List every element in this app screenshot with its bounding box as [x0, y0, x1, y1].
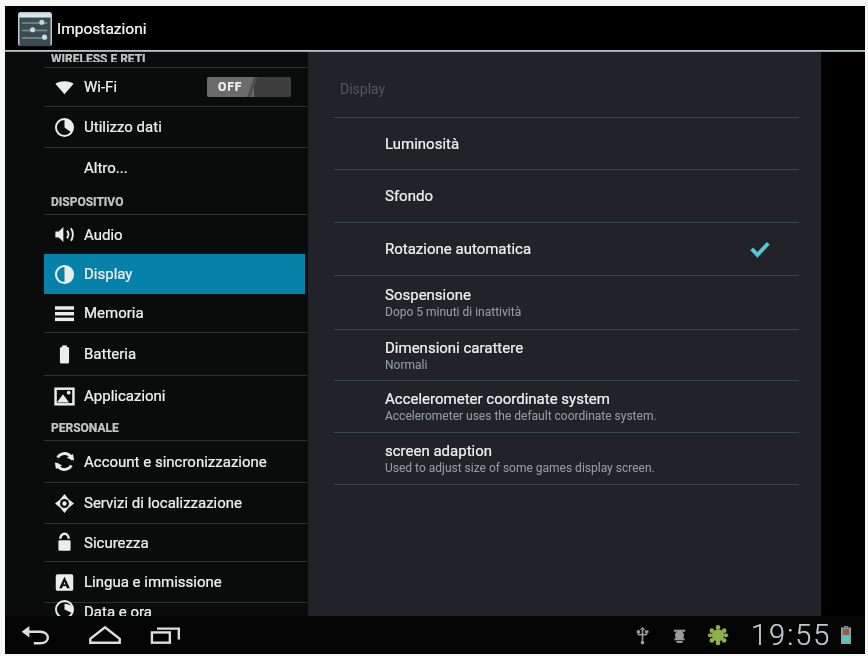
staticText: Sfondo [385, 187, 433, 205]
staticText: Dimensioni carattere [385, 339, 524, 357]
staticText: Rotazione automatica [385, 240, 532, 258]
button[interactable]: Rotazione automatica [385, 223, 799, 275]
staticText: Lingua e immissione [84, 573, 222, 591]
staticText: Memoria [84, 304, 144, 322]
staticText: WIRELESS E RETI [51, 52, 146, 62]
staticText: Accelerometer uses the default coordinat… [385, 409, 657, 423]
staticText: Account e sincronizzazione [84, 453, 267, 471]
staticText: Sospensione [385, 286, 472, 304]
staticText: Impostazioni [57, 20, 147, 38]
button[interactable]: Data e ora [44, 603, 305, 616]
button[interactable]: screen adaption [385, 433, 799, 484]
button[interactable]: Lingua e immissione [44, 562, 305, 602]
button[interactable]: Audio [44, 215, 305, 254]
staticText: Data e ora [84, 603, 152, 616]
button[interactable]: Recent apps [148, 617, 184, 653]
staticText: Applicazioni [84, 387, 166, 405]
button[interactable]: Utilizzo dati [44, 107, 305, 147]
staticText: screen adaption [385, 442, 493, 460]
button[interactable]: Sfondo [385, 170, 799, 222]
button[interactable]: OFF [207, 77, 291, 97]
button[interactable]: Account e sincronizzazione [44, 441, 305, 482]
staticText: Sicurezza [84, 534, 149, 552]
staticText: DISPOSITIVO [51, 195, 124, 209]
staticText: OFF [218, 80, 243, 94]
button[interactable]: Batteria [44, 333, 305, 375]
staticText: 19:55 [751, 618, 832, 652]
button[interactable]: Sospensione [385, 276, 799, 329]
button[interactable]: Sicurezza [44, 524, 305, 561]
button[interactable]: Display [44, 254, 305, 294]
button[interactable]: Rotazione automatica [748, 237, 772, 261]
button[interactable]: Luminosità [385, 118, 799, 169]
button[interactable]: Accelerometer coordinate system [385, 381, 799, 432]
staticText: Utilizzo dati [84, 118, 162, 136]
button[interactable]: Wi-Fi [44, 68, 305, 106]
staticText: Batteria [84, 345, 137, 363]
button[interactable]: Applicazioni [44, 376, 305, 416]
button[interactable]: Home [87, 617, 123, 653]
button[interactable]: Altro... [44, 148, 305, 188]
staticText: PERSONALE [51, 421, 119, 435]
staticText: Display [84, 265, 133, 283]
staticText: Normali [385, 358, 428, 372]
staticText: Used to adjust size of some games displa… [385, 461, 655, 475]
staticText: Wi-Fi [84, 78, 118, 96]
button[interactable]: Back [19, 617, 55, 653]
button[interactable]: Dimensioni carattere [385, 330, 799, 380]
staticText: Audio [84, 226, 123, 244]
staticText: Altro... [84, 159, 128, 177]
staticText: Display [340, 81, 386, 97]
staticText: Dopo 5 minuti di inattività [385, 305, 522, 319]
staticText: Accelerometer coordinate system [385, 390, 610, 408]
staticText: Servizi di localizzazione [84, 494, 243, 512]
staticText: Luminosità [385, 135, 460, 153]
button[interactable]: Memoria [44, 294, 305, 332]
button[interactable]: Servizi di localizzazione [44, 483, 305, 523]
